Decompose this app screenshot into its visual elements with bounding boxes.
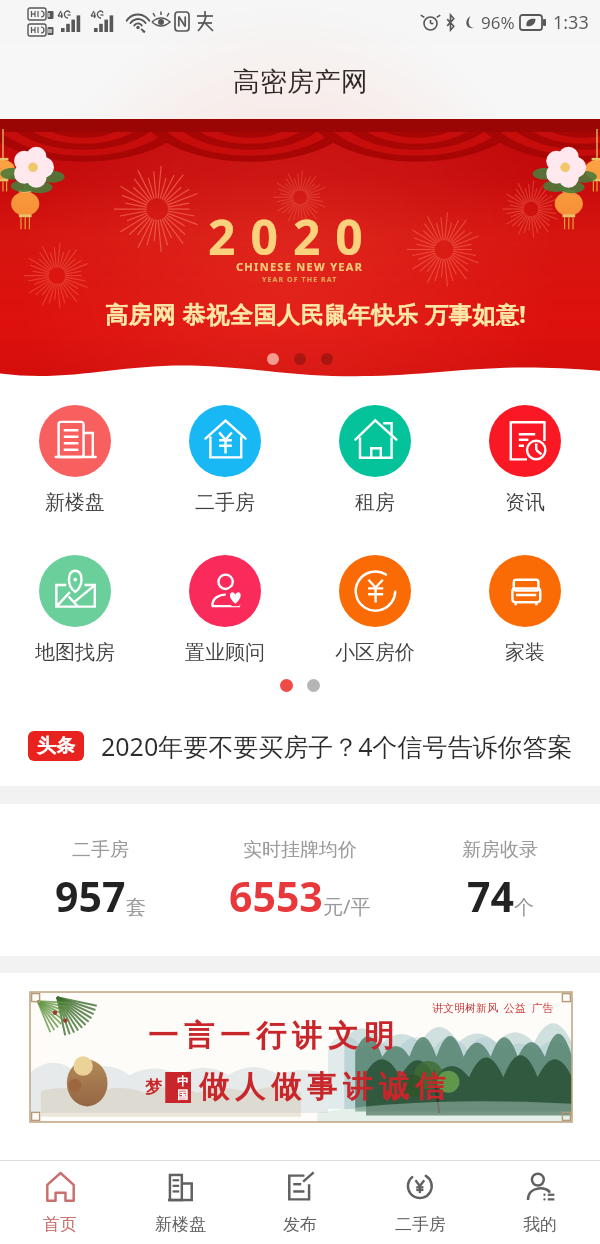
staticText: 租房 — [355, 490, 395, 515]
button[interactable]: 新楼盘 — [0, 405, 150, 515]
staticText: 首页 — [43, 1214, 77, 1235]
staticText: 新房收录 — [462, 838, 538, 862]
staticText: 小区房价 — [335, 640, 415, 665]
button[interactable]: 我的 — [480, 1161, 600, 1244]
staticText: 高房网 恭祝全国人民鼠年快乐 万事如意! — [105, 298, 527, 329]
button[interactable]: 置业顾问 — [150, 555, 300, 665]
staticText: 新楼盘 — [155, 1214, 206, 1235]
staticText: 元/平 — [323, 893, 371, 920]
staticText: 二手房 — [395, 1214, 446, 1235]
staticText: 2020年要不要买房子？4个信号告诉你答案 — [101, 729, 573, 763]
staticText: YEAR OF THE RAT — [262, 275, 338, 285]
button[interactable]: 二手房 — [150, 405, 300, 515]
button[interactable]: 二手房 — [360, 1161, 480, 1244]
button[interactable]: 新房收录 — [400, 804, 600, 956]
button[interactable]: 发布 — [240, 1161, 360, 1244]
staticText: 讲文明树新风 公益 广告 — [432, 1000, 554, 1015]
button[interactable]: 新楼盘 — [120, 1161, 240, 1244]
staticText: 置业顾问 — [185, 640, 265, 665]
staticText: 国 — [177, 1088, 188, 1102]
staticText: 发布 — [283, 1214, 317, 1235]
staticText: 头条 — [37, 734, 75, 758]
button[interactable]: 租房 — [300, 405, 450, 515]
staticText: 个 — [514, 895, 534, 920]
staticText: 套 — [126, 895, 146, 920]
button[interactable]: 小区房价 — [300, 555, 450, 665]
button[interactable]: 二手房 — [0, 804, 200, 956]
staticText: 做人做事讲诚信 — [196, 1068, 448, 1106]
staticText: 96% — [481, 11, 515, 34]
staticText: 2020 — [208, 204, 378, 269]
staticText: 梦 — [145, 1077, 162, 1098]
button[interactable]: 地图找房 — [0, 555, 150, 665]
staticText: 6553 — [229, 868, 323, 924]
button[interactable]: 资讯 — [450, 405, 600, 515]
staticText: 957 — [55, 868, 126, 924]
staticText: 1:33 — [553, 10, 589, 35]
staticText: 二手房 — [72, 838, 129, 862]
staticText: 74 — [467, 868, 514, 924]
staticText: 家装 — [505, 640, 545, 665]
staticText: 地图找房 — [35, 640, 115, 665]
button[interactable]: 首页 — [0, 1161, 120, 1244]
button[interactable]: 一言一行讲文明 — [30, 992, 572, 1122]
staticText: 一言一行讲文明 — [145, 1017, 397, 1055]
staticText: 二手房 — [195, 490, 255, 515]
staticText: 高密房产网 — [233, 65, 368, 99]
staticText: 中 — [177, 1074, 188, 1088]
staticText: CHINESE NEW YEAR — [236, 259, 364, 274]
button[interactable]: 实时挂牌均价 — [200, 804, 400, 956]
staticText: 我的 — [523, 1214, 557, 1235]
staticText: 资讯 — [505, 490, 545, 515]
staticText: 新楼盘 — [45, 490, 105, 515]
button[interactable]: 家装 — [450, 555, 600, 665]
button[interactable]: 头条 — [0, 706, 600, 786]
staticText: 实时挂牌均价 — [243, 838, 357, 862]
